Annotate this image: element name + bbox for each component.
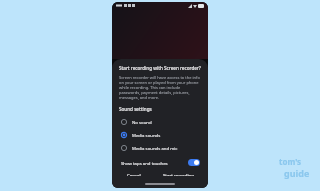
staticText: Sound settings bbox=[119, 106, 152, 112]
button[interactable]: Show taps and touches bbox=[119, 156, 201, 169]
button[interactable]: Start recording bbox=[157, 169, 200, 179]
staticText: tom's bbox=[279, 156, 302, 167]
staticText: Start recording with Screen recorder? bbox=[119, 65, 201, 71]
staticText: Start recording bbox=[163, 172, 194, 176]
button[interactable]: No sound bbox=[119, 115, 201, 128]
staticText: guide bbox=[284, 167, 310, 179]
staticText: Cancel bbox=[127, 172, 141, 176]
button[interactable]: Cancel bbox=[121, 169, 147, 179]
button[interactable]: Media sounds bbox=[119, 128, 201, 141]
staticText: No sound bbox=[132, 119, 152, 125]
staticText: Media sounds bbox=[132, 132, 161, 138]
staticText: Screen recorder will have access to the … bbox=[119, 75, 201, 100]
staticText: Media sounds and mic bbox=[132, 145, 178, 151]
other: Show taps and touches toggle bbox=[188, 159, 200, 166]
button[interactable]: Media sounds and mic bbox=[119, 141, 201, 154]
staticText: Show taps and touches bbox=[121, 160, 188, 166]
